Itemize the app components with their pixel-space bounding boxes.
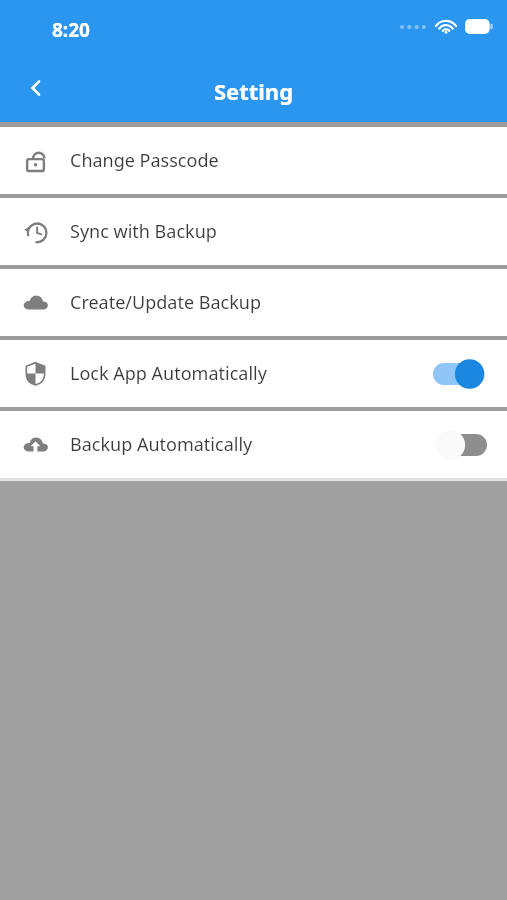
staticText: Create/Update Backup bbox=[70, 290, 507, 315]
button[interactable]: Sync with Backup bbox=[0, 198, 507, 265]
button[interactable]: Change Passcode bbox=[0, 127, 507, 194]
staticText: Backup Automatically bbox=[70, 432, 431, 457]
button[interactable]: Backup Automatically bbox=[0, 411, 507, 478]
staticText: Change Passcode bbox=[70, 148, 507, 173]
button[interactable]: Back bbox=[14, 66, 58, 110]
button[interactable]: Lock App Automatically bbox=[0, 340, 507, 407]
staticText: Setting bbox=[0, 76, 507, 106]
button[interactable]: Create/Update Backup bbox=[0, 269, 507, 336]
staticText: 8:20 bbox=[52, 17, 90, 43]
staticText: Sync with Backup bbox=[70, 219, 507, 244]
button[interactable]: Backup Automatically bbox=[431, 425, 489, 465]
button[interactable]: Lock App Automatically bbox=[431, 354, 489, 394]
staticText: Lock App Automatically bbox=[70, 361, 431, 386]
